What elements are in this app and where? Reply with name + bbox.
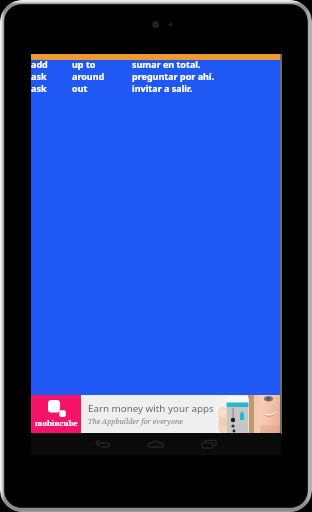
staticText: The Appbuilder for everyone <box>88 416 183 426</box>
staticText: invitar a salir. <box>132 82 193 94</box>
staticText: mobincube <box>35 418 78 428</box>
staticText: preguntar por ahí. <box>132 70 215 82</box>
button[interactable]: Back <box>84 434 120 454</box>
staticText: ask <box>31 82 72 94</box>
staticText: Earn money with your apps <box>88 402 214 415</box>
button[interactable]: Recent apps <box>189 434 225 454</box>
button[interactable]: mobincube <box>31 395 281 433</box>
staticText: add <box>31 58 72 70</box>
staticText: ask <box>31 70 72 82</box>
staticText: up to <box>72 58 132 70</box>
button[interactable]: Home <box>136 434 172 454</box>
staticText: sumar en total. <box>132 58 201 70</box>
staticText: around <box>72 70 132 82</box>
staticText: out <box>72 82 132 94</box>
